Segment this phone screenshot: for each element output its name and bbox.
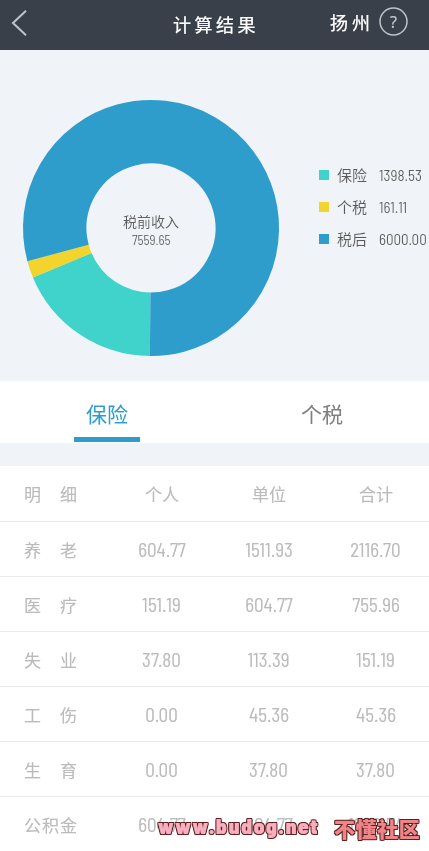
button[interactable]: 个税: [214, 381, 429, 443]
staticText: 161.11: [379, 198, 408, 216]
button[interactable]: 保险: [0, 381, 214, 443]
staticText: 151.19: [142, 593, 181, 616]
staticText: www.budog.net: [157, 812, 319, 837]
staticText: 保险: [337, 164, 368, 186]
staticText: www.budog.net: [158, 813, 320, 838]
staticText: 不懂社区: [335, 814, 422, 844]
staticText: 伤: [60, 702, 77, 727]
staticText: 151.19: [356, 648, 395, 671]
staticText: 工: [24, 702, 41, 727]
staticText: 不懂社区: [334, 812, 421, 842]
staticText: 公: [24, 812, 41, 837]
staticText: 失: [24, 647, 41, 672]
staticText: 604.77: [138, 813, 186, 836]
staticText: 税前收入: [123, 211, 179, 231]
staticText: 不懂社区: [333, 813, 420, 843]
button[interactable]: Help: [379, 7, 408, 36]
staticText: 个人: [145, 481, 179, 506]
staticText: www.budog.net: [159, 814, 321, 839]
staticText: 个税: [337, 196, 368, 218]
staticText: 不懂社区: [334, 814, 421, 844]
staticText: 不懂社区: [335, 812, 422, 842]
staticText: 明: [24, 481, 41, 506]
staticText: 金: [60, 812, 77, 837]
staticText: www.budog.net: [158, 812, 320, 837]
staticText: 604.77: [245, 593, 293, 616]
staticText: 不懂社区: [333, 814, 420, 844]
staticText: www.budog.net: [159, 813, 321, 838]
staticText: 税后: [337, 228, 368, 250]
staticText: 0.00: [145, 758, 178, 781]
staticText: 计算结果: [173, 11, 259, 37]
staticText: 老: [60, 537, 77, 562]
staticText: 细: [60, 481, 77, 506]
staticText: 7559.65: [132, 232, 171, 248]
staticText: www.budog.net: [159, 812, 321, 837]
staticText: 积: [42, 812, 59, 837]
staticText: 医: [24, 592, 41, 617]
staticText: 1209.54: [348, 813, 404, 836]
staticText: 养: [24, 537, 41, 562]
staticText: 755.96: [352, 593, 400, 616]
button[interactable]: Back: [2, 0, 36, 45]
staticText: 单位: [252, 481, 286, 506]
staticText: 37.80: [356, 758, 395, 781]
staticText: www.budog.net: [157, 814, 319, 839]
staticText: 不懂社区: [333, 812, 420, 842]
staticText: 疗: [60, 592, 77, 617]
staticText: 0.00: [145, 703, 178, 726]
staticText: 604.77: [138, 538, 186, 561]
staticText: 个税: [301, 398, 343, 428]
staticText: 6000.00: [379, 230, 427, 248]
staticText: 业: [60, 647, 77, 672]
staticText: 45.36: [249, 703, 289, 726]
staticText: 604.77: [245, 813, 293, 836]
staticText: 113.39: [247, 648, 290, 671]
staticText: 2116.70: [350, 538, 401, 561]
staticText: 1398.53: [379, 166, 422, 184]
staticText: 保险: [86, 398, 128, 428]
staticText: 合计: [359, 481, 393, 506]
staticText: 45.36: [356, 703, 396, 726]
staticText: 1511.93: [245, 538, 293, 561]
button[interactable]: 扬州: [326, 9, 370, 35]
staticText: 育: [60, 757, 77, 782]
staticText: www.budog.net: [157, 813, 319, 838]
staticText: www.budog.net: [158, 814, 320, 839]
staticText: ?: [390, 11, 397, 33]
staticText: 不懂社区: [335, 813, 422, 843]
staticText: 37.80: [249, 758, 288, 781]
staticText: 37.80: [142, 648, 181, 671]
staticText: 不懂社区: [334, 813, 421, 843]
staticText: 生: [24, 757, 41, 782]
